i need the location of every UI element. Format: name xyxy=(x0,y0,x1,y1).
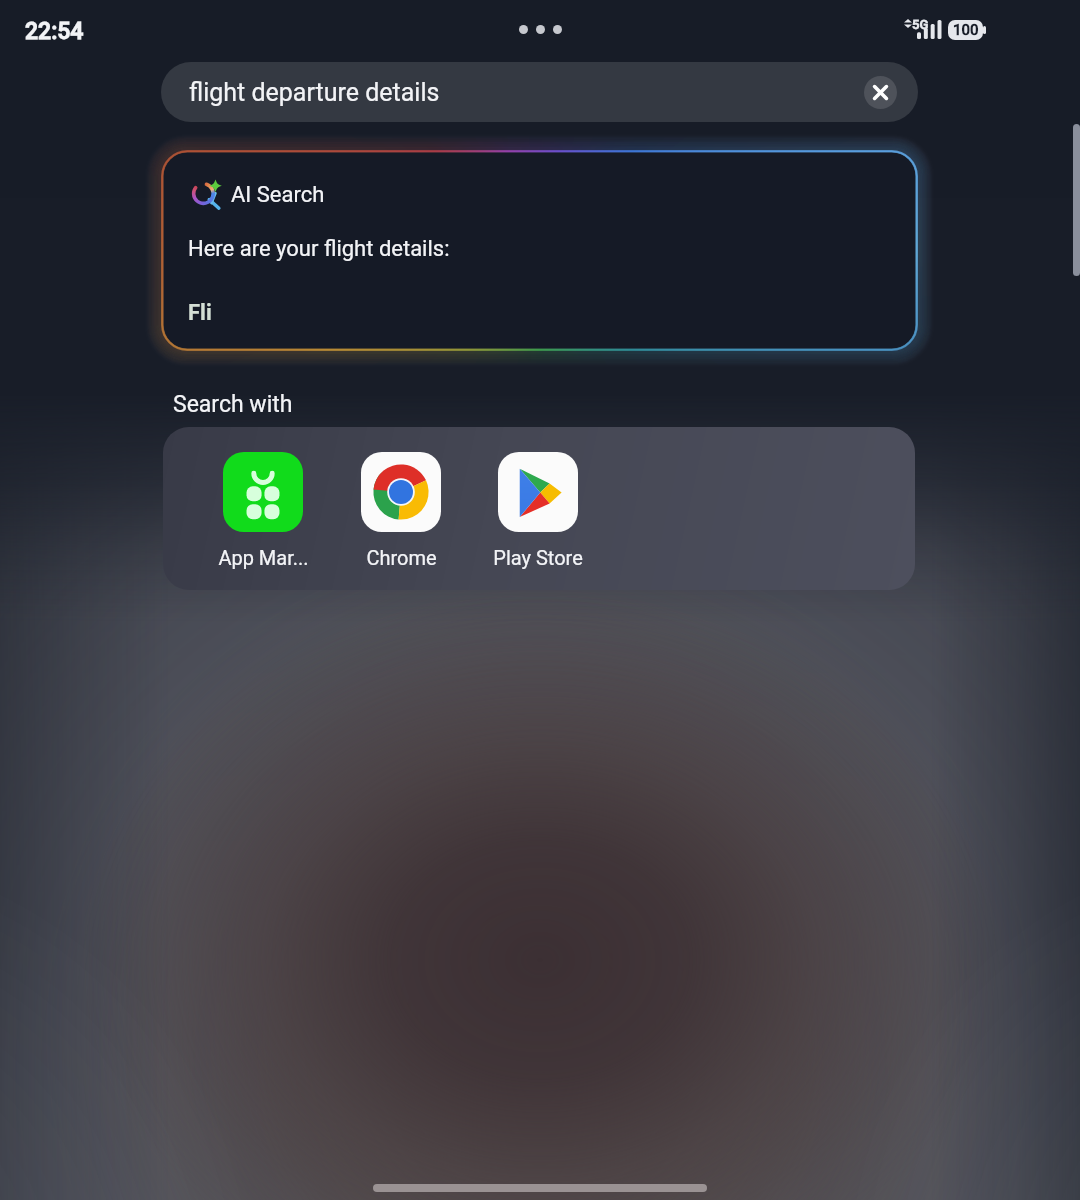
staticText: 5G xyxy=(912,17,929,32)
staticText: Play Store xyxy=(493,546,583,569)
button[interactable]: Play Store xyxy=(460,452,616,569)
button[interactable]: AI Search xyxy=(164,153,915,348)
staticText: App Mar... xyxy=(218,546,309,569)
button[interactable]: Chrome xyxy=(323,452,479,569)
staticText: Fli xyxy=(188,300,212,326)
button[interactable]: App Mar... xyxy=(185,452,341,569)
staticText: Chrome xyxy=(366,546,437,569)
staticText: flight departure details xyxy=(189,78,440,107)
staticText: 22:54 xyxy=(25,18,84,45)
staticText: AI Search xyxy=(231,182,325,208)
button[interactable]: flight departure details xyxy=(161,62,918,122)
staticText: 100 xyxy=(953,21,979,39)
button[interactable]: Clear search xyxy=(864,76,897,109)
staticText: Search with xyxy=(173,391,293,418)
staticText: Here are your flight details: xyxy=(188,236,450,262)
